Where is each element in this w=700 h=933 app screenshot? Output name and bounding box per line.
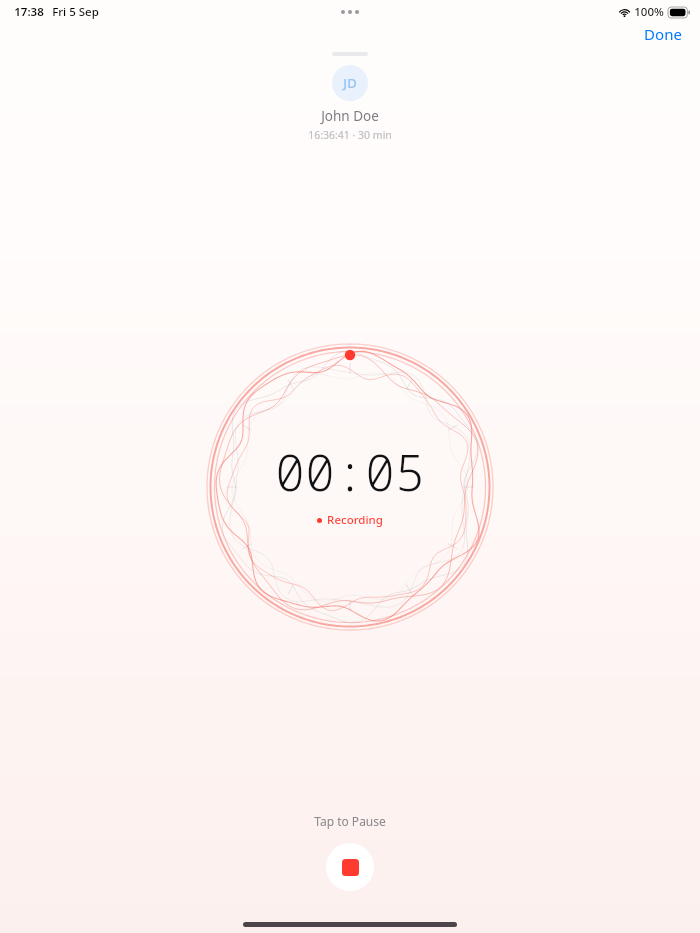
staticText: Tap to Pause bbox=[314, 813, 386, 829]
staticText: 17:38 bbox=[14, 4, 44, 20]
button[interactable]: Done bbox=[634, 20, 692, 48]
staticText: 00:05 bbox=[275, 438, 425, 506]
staticText: Recording bbox=[327, 512, 383, 528]
staticText: JD bbox=[343, 74, 357, 92]
staticText: Done bbox=[644, 24, 682, 44]
button[interactable]: Pause recording bbox=[326, 843, 374, 891]
staticText: 16:36:41 · 30 min bbox=[308, 128, 392, 142]
staticText: 100% bbox=[634, 4, 664, 20]
button[interactable]: JD bbox=[332, 65, 368, 101]
staticText: Fri 5 Sep bbox=[52, 4, 99, 20]
staticText: John Doe bbox=[321, 107, 379, 125]
